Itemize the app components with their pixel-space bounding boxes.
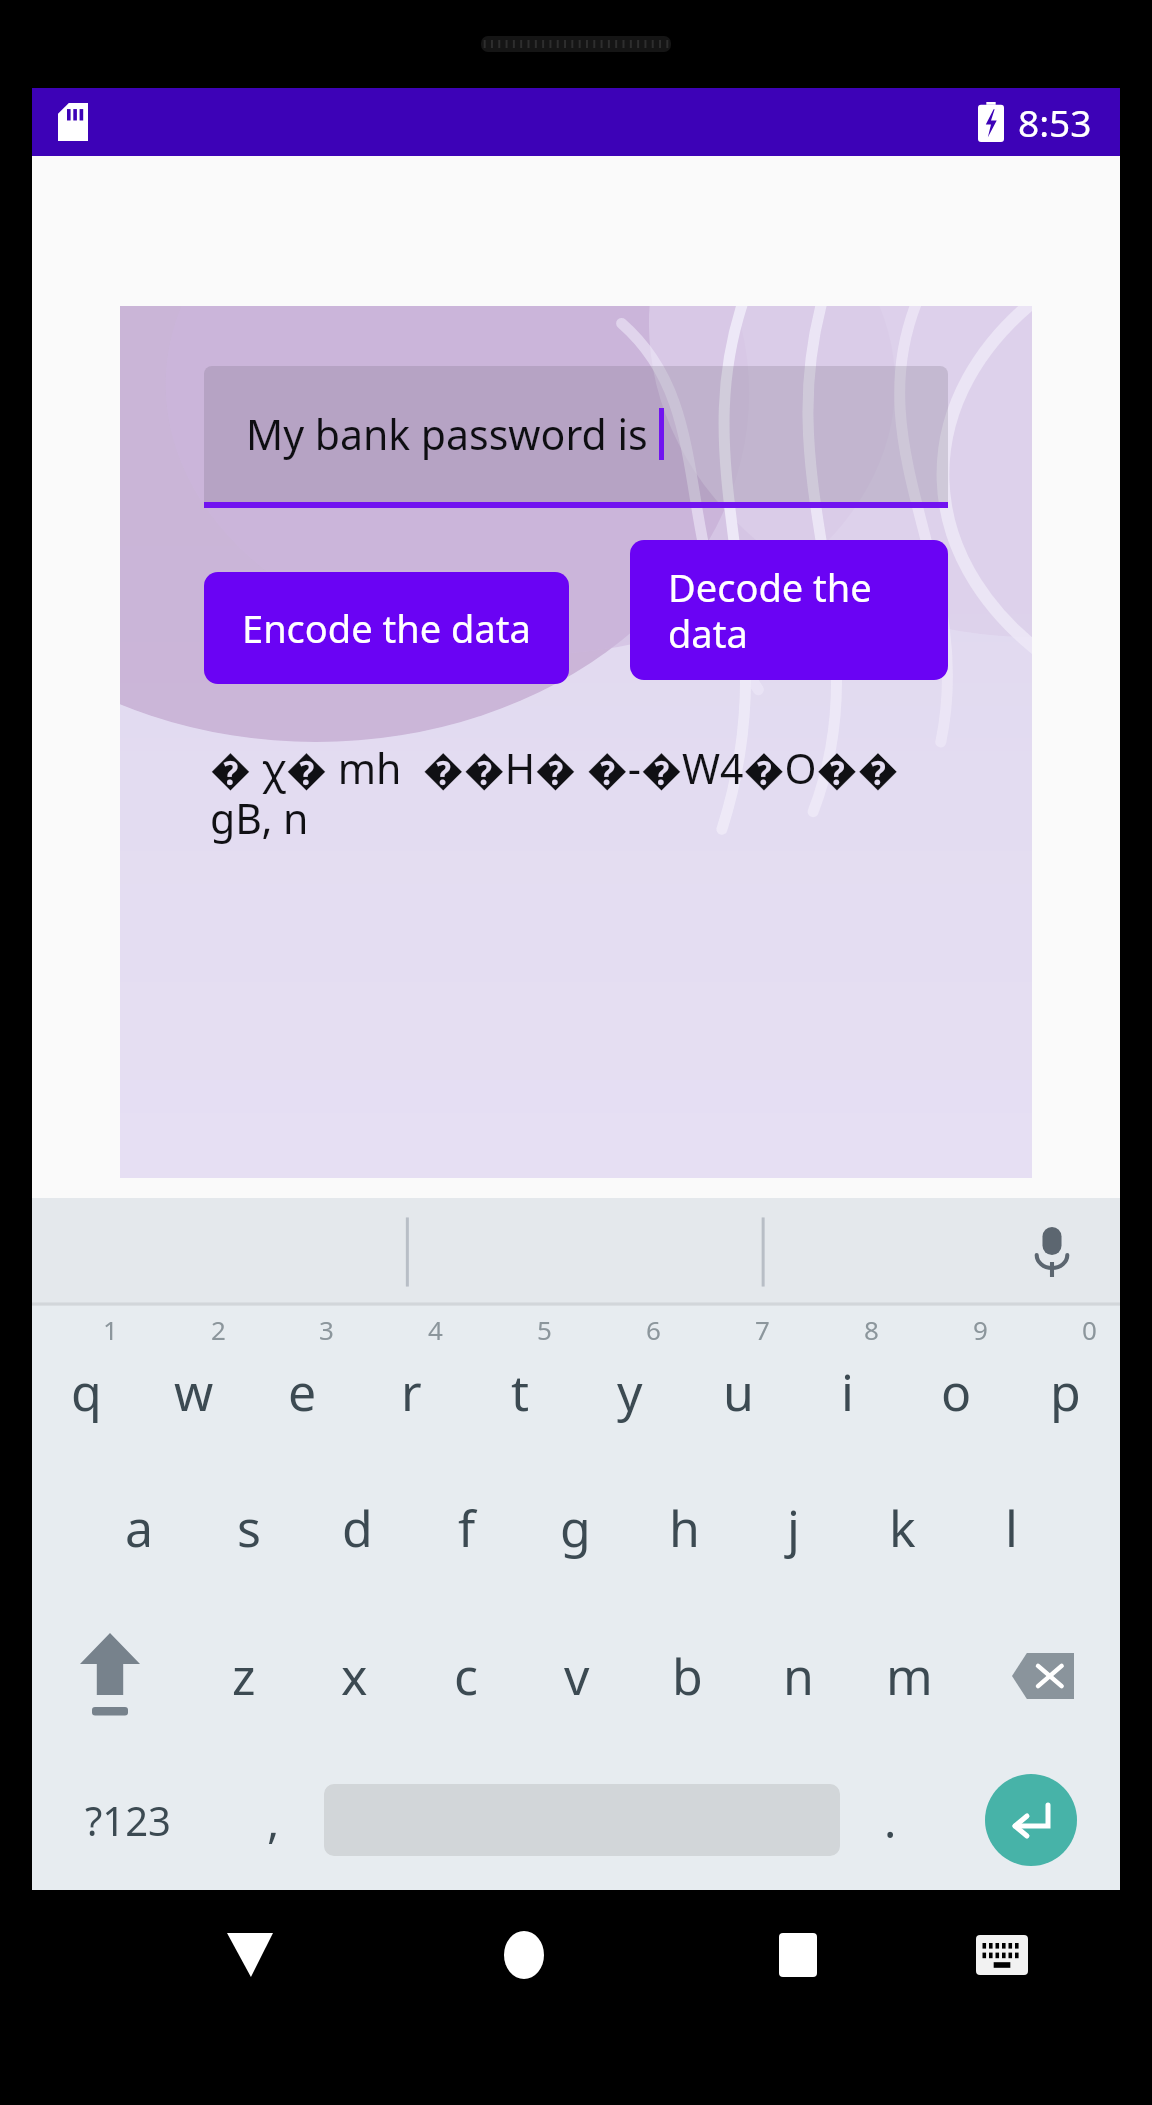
- staticText: w: [174, 1358, 214, 1426]
- button[interactable]: ?123: [32, 1750, 223, 1890]
- staticText: Encode the data: [242, 602, 531, 654]
- staticText: i: [841, 1358, 854, 1426]
- staticText: 1: [103, 1312, 118, 1347]
- staticText: d: [342, 1494, 373, 1562]
- button[interactable]: Encode the data: [204, 572, 569, 684]
- staticText: p: [1050, 1358, 1081, 1426]
- button[interactable]: d: [303, 1454, 412, 1602]
- button[interactable]: g: [521, 1454, 630, 1602]
- button[interactable]: 3: [248, 1306, 357, 1454]
- staticText: 6: [646, 1312, 661, 1347]
- staticText: t: [511, 1358, 530, 1426]
- staticText: h: [669, 1494, 700, 1562]
- button[interactable]: Recent apps: [709, 1890, 886, 2020]
- staticText: n: [783, 1642, 814, 1710]
- staticText: k: [889, 1494, 916, 1562]
- staticText: o: [941, 1358, 972, 1426]
- staticText: x: [341, 1642, 368, 1710]
- button[interactable]: Hide keyboard: [913, 1890, 1090, 2020]
- button[interactable]: j: [739, 1454, 848, 1602]
- button[interactable]: 7: [684, 1306, 793, 1454]
- button[interactable]: Backspace: [965, 1602, 1120, 1750]
- button[interactable]: f: [412, 1454, 521, 1602]
- staticText: 7: [755, 1312, 770, 1347]
- button[interactable]: m: [854, 1602, 965, 1750]
- button[interactable]: 5: [466, 1306, 575, 1454]
- staticText: � χ� mh ��H� �-�W4�O�� gB, n: [210, 740, 942, 846]
- button[interactable]: My bank password is: [204, 366, 948, 508]
- button[interactable]: Decode the data: [630, 540, 948, 680]
- staticText: 8: [864, 1312, 879, 1347]
- staticText: ,: [267, 1789, 280, 1852]
- staticText: f: [458, 1494, 476, 1562]
- staticText: 8:53: [1018, 97, 1092, 147]
- staticText: l: [1005, 1494, 1018, 1562]
- staticText: z: [232, 1642, 256, 1710]
- button[interactable]: z: [188, 1602, 299, 1750]
- button[interactable]: l: [957, 1454, 1066, 1602]
- button[interactable]: 6: [575, 1306, 684, 1454]
- staticText: 3: [319, 1312, 334, 1347]
- button[interactable]: 2: [140, 1306, 248, 1454]
- button[interactable]: 4: [357, 1306, 466, 1454]
- staticText: b: [672, 1642, 703, 1710]
- staticText: 5: [537, 1312, 552, 1347]
- staticText: 0: [1082, 1312, 1097, 1347]
- button[interactable]: Voice input: [1022, 1222, 1082, 1282]
- staticText: v: [564, 1642, 590, 1710]
- staticText: e: [288, 1358, 317, 1426]
- staticText: g: [560, 1494, 591, 1562]
- staticText: y: [617, 1358, 643, 1426]
- staticText: r: [401, 1358, 422, 1426]
- other: SIM card: [58, 103, 88, 141]
- button[interactable]: x: [299, 1602, 410, 1750]
- button[interactable]: 9: [902, 1306, 1011, 1454]
- button[interactable]: k: [848, 1454, 957, 1602]
- button[interactable]: .: [840, 1750, 941, 1890]
- button[interactable]: v: [521, 1602, 632, 1750]
- other: Battery charging: [978, 102, 1004, 142]
- staticText: m: [886, 1642, 933, 1710]
- button[interactable]: n: [743, 1602, 854, 1750]
- staticText: q: [71, 1358, 102, 1426]
- button[interactable]: Enter: [985, 1774, 1077, 1866]
- staticText: .: [884, 1789, 897, 1852]
- staticText: u: [723, 1358, 754, 1426]
- button[interactable]: 0: [1011, 1306, 1120, 1454]
- button[interactable]: c: [410, 1602, 521, 1750]
- staticText: 2: [211, 1312, 226, 1347]
- button[interactable]: 1: [32, 1306, 140, 1454]
- button[interactable]: Back: [161, 1890, 338, 2020]
- staticText: My bank password is: [246, 406, 659, 462]
- button[interactable]: a: [85, 1454, 194, 1602]
- staticText: 4: [428, 1312, 443, 1347]
- button[interactable]: h: [630, 1454, 739, 1602]
- button[interactable]: ,: [223, 1750, 324, 1890]
- button[interactable]: Home: [435, 1890, 612, 2020]
- staticText: c: [454, 1642, 478, 1710]
- staticText: s: [237, 1494, 261, 1562]
- staticText: a: [125, 1494, 154, 1562]
- staticText: Decode the data: [668, 561, 928, 659]
- button[interactable]: b: [632, 1602, 743, 1750]
- button[interactable]: 8: [793, 1306, 902, 1454]
- staticText: 9: [973, 1312, 988, 1347]
- staticText: j: [787, 1494, 800, 1562]
- staticText: ?123: [85, 1793, 171, 1847]
- button[interactable]: s: [194, 1454, 303, 1602]
- button[interactable]: Shift: [32, 1602, 188, 1750]
